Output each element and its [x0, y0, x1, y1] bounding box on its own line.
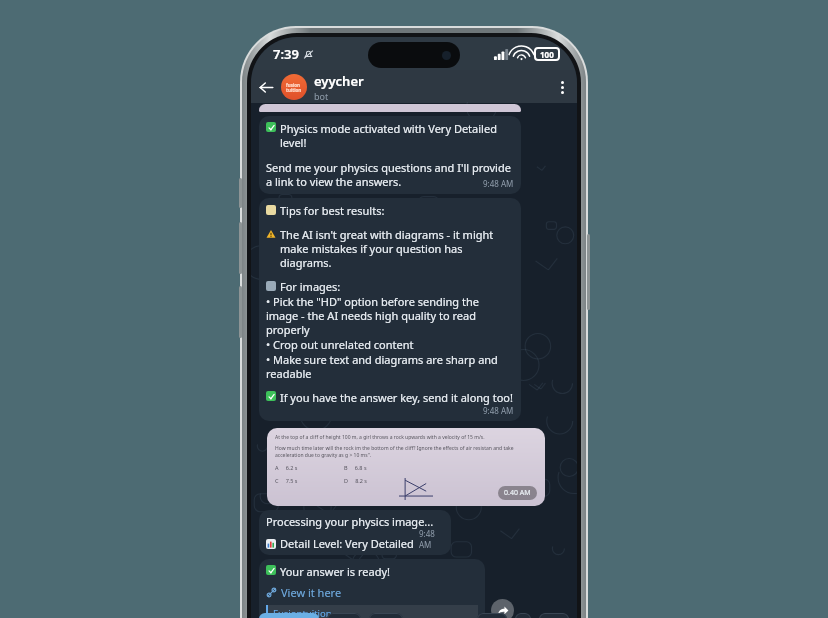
button[interactable]: At the top of a cliff of height 100 m, a… [267, 428, 545, 506]
staticText: Detail Level: Very Detailed [280, 536, 414, 551]
button[interactable]: Processing your physics image... [259, 510, 451, 555]
button[interactable]: More options [547, 72, 577, 102]
button[interactable]: Back [251, 72, 281, 102]
staticText: Fusiontuition [273, 607, 332, 618]
staticText: eyycher [314, 72, 364, 90]
staticText: The AI isn't great with diagrams - it mi… [280, 227, 514, 270]
staticText: bot [314, 90, 329, 102]
staticText: View it here [281, 585, 342, 600]
staticText: Send me your physics questions and I'll … [266, 160, 514, 189]
staticText: 9:48 AM [483, 405, 514, 416]
staticText: A 6.2 s [275, 464, 298, 471]
button[interactable]: Fusiontuition [266, 605, 478, 618]
staticText: • Make sure text and diagrams are sharp … [266, 352, 514, 381]
staticText: At the top of a cliff of height 100 m, a… [275, 434, 485, 441]
staticText: Physics mode activated with Very Detaile… [280, 121, 514, 150]
staticText: • Pick the "HD" option before sending th… [266, 294, 514, 337]
staticText: Tips for best results: [280, 203, 385, 218]
button[interactable]: Option [327, 613, 361, 618]
button[interactable]: Quick reply [259, 613, 319, 618]
staticText: Processing your physics image... [266, 514, 434, 529]
button[interactable]: Option [369, 613, 403, 618]
staticText: fusion tuition [286, 82, 302, 93]
staticText: 7:39 [273, 45, 299, 63]
staticText: For images: [280, 279, 341, 294]
button[interactable]: Option [477, 613, 507, 618]
staticText: • Crop out unrelated content [266, 337, 414, 352]
staticText: 9:48 AM [419, 528, 444, 550]
staticText: 100 [540, 49, 554, 60]
button[interactable]: Tips for best results: [259, 198, 521, 421]
staticText: Your answer is ready! [280, 564, 391, 579]
button[interactable]: Option [539, 613, 569, 618]
staticText: If you have the answer key, send it alon… [280, 390, 513, 405]
button[interactable]: Forward [491, 599, 514, 618]
staticText: C 7.5 s [275, 477, 298, 484]
button[interactable]: Option [515, 613, 531, 618]
button[interactable]: Physics mode activated with Very Detaile… [259, 116, 521, 194]
staticText: D 8.2 s [344, 477, 367, 484]
button[interactable]: Your answer is ready! [259, 559, 485, 618]
staticText: B 6.8 s [344, 464, 367, 471]
staticText: 0.40 AM [504, 488, 531, 498]
button[interactable]: fusion tuition [281, 72, 547, 102]
staticText: 9:48 AM [483, 178, 514, 189]
staticText: How much time later will the rock im the… [275, 445, 537, 459]
button[interactable]: View it here [266, 585, 342, 600]
